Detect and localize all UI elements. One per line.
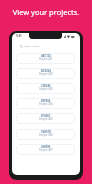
- staticText: Project 406: [39, 133, 53, 137]
- staticText: Project 405: [39, 117, 53, 121]
- other: Search: [20, 45, 23, 48]
- staticText: CDE345: [41, 84, 51, 88]
- staticText: FGH678: [41, 130, 51, 134]
- staticText: GHI789: [41, 145, 51, 149]
- staticText: ABC123: [41, 54, 51, 58]
- button[interactable]: DEF456: [16, 98, 75, 109]
- button[interactable]: CDE345: [16, 83, 75, 94]
- staticText: BCD234: [41, 69, 51, 73]
- button[interactable]: EFG567: [16, 113, 75, 124]
- staticText: 9:41: [16, 34, 22, 38]
- button[interactable]: ABC123: [16, 53, 75, 64]
- button[interactable]: FGH678: [16, 129, 75, 140]
- button[interactable]: Search: [12, 43, 80, 49]
- staticText: Project 402: [39, 72, 53, 76]
- staticText: DEF456: [41, 99, 51, 103]
- staticText: Project 401: [39, 57, 53, 61]
- staticText: Project 403: [39, 87, 53, 91]
- staticText: EFG567: [41, 114, 51, 118]
- staticText: View your projects.: [0, 7, 92, 17]
- staticText: Project 407: [39, 148, 53, 152]
- button[interactable]: BCD234: [16, 68, 75, 79]
- staticText: Project 404: [39, 102, 53, 106]
- button[interactable]: GHI789: [16, 144, 75, 155]
- staticText: Search Project: [24, 45, 40, 48]
